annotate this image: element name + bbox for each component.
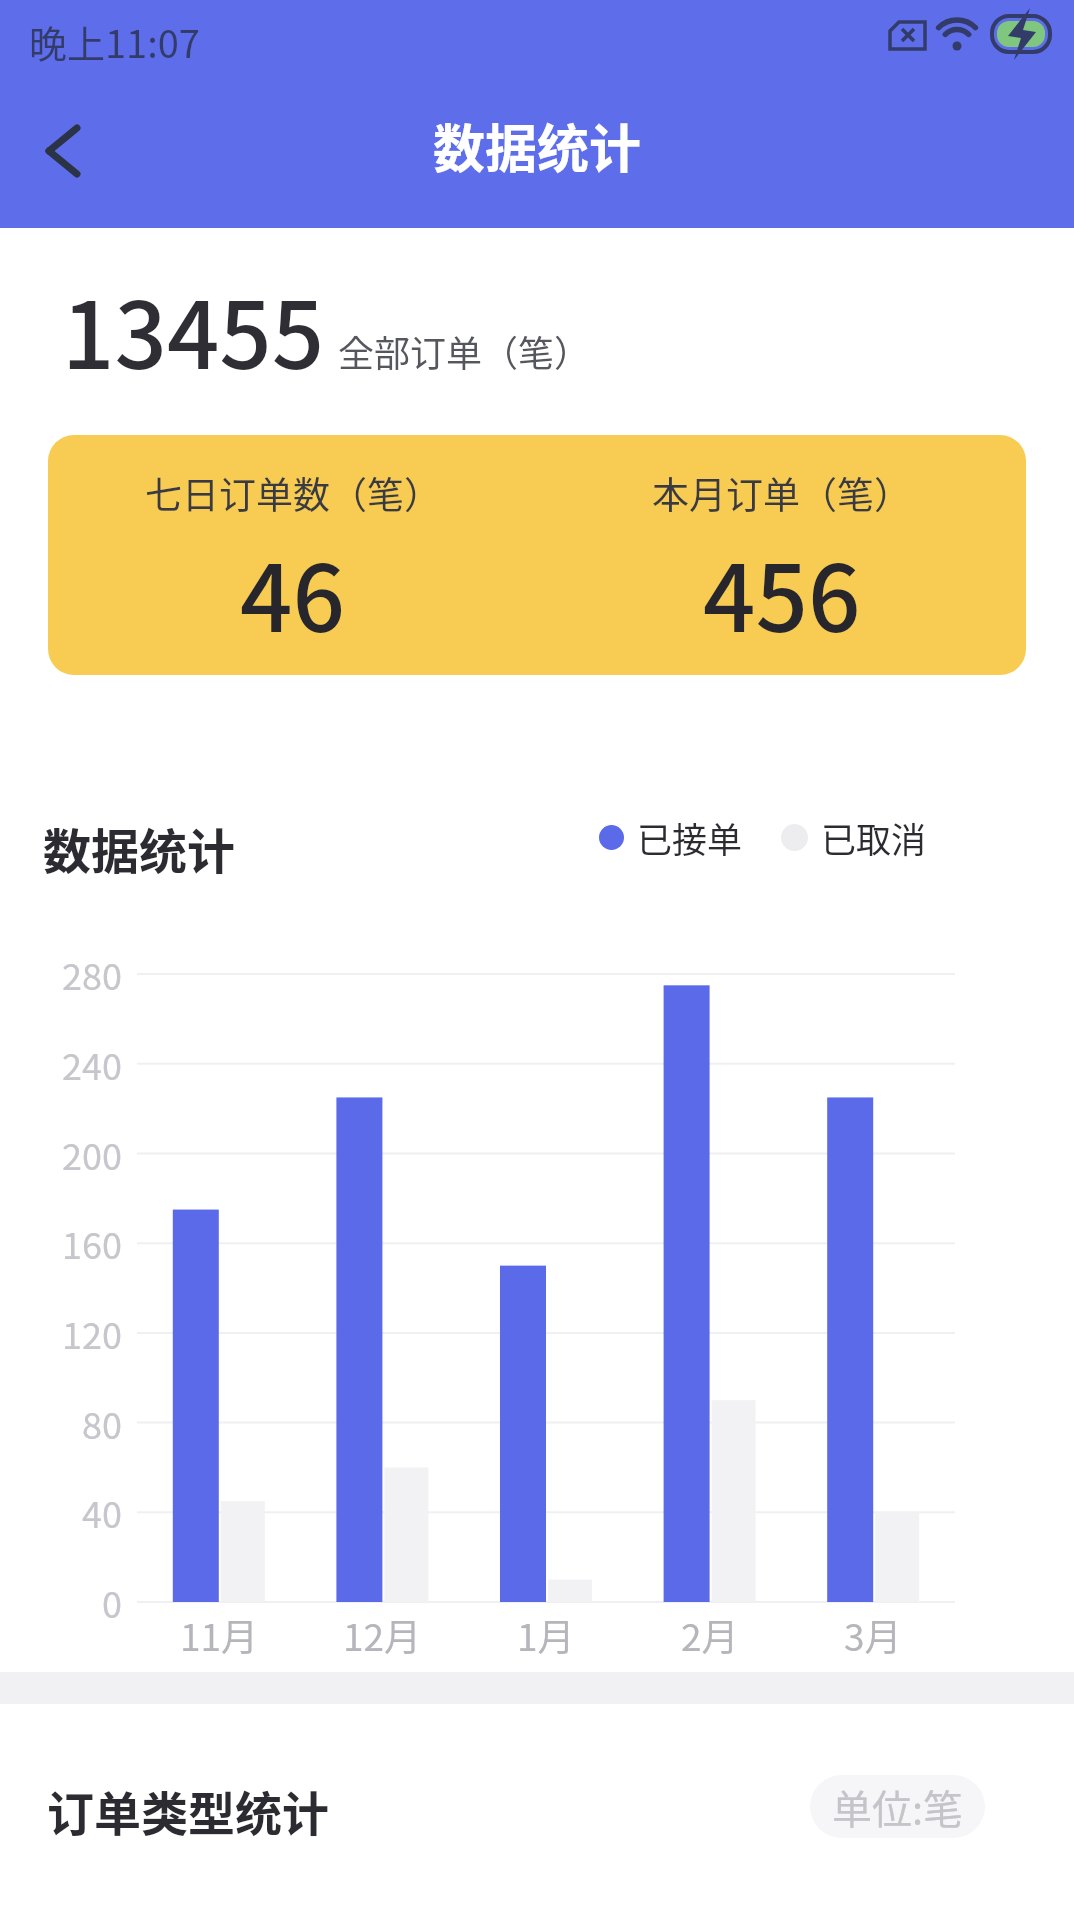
staticText: 单位:笔 [832,1778,964,1836]
staticText: 本月订单（笔） [652,466,911,520]
staticText: 456 [703,525,861,658]
button[interactable]: 七日订单数（笔） [48,435,1026,675]
staticText: 240 [62,1038,122,1090]
staticText: 订单类型统计 [47,1776,329,1844]
staticText: 13455 [62,262,325,395]
staticText: 200 [62,1128,122,1180]
staticText: 160 [62,1217,122,1269]
staticText: 80 [82,1397,122,1449]
staticText: 已取消 [821,812,927,863]
staticText: 280 [62,948,122,1000]
staticText: 全部订单（笔） [338,325,591,377]
staticText: 40 [82,1486,122,1538]
staticText: 46 [240,525,345,658]
staticText: 120 [62,1307,122,1359]
button[interactable] [20,110,110,200]
staticText: 11月 [180,1608,259,1662]
button[interactable]: 已接单 [599,812,927,863]
staticText: 已接单 [637,812,743,863]
staticText: 0 [102,1576,122,1628]
staticText: 1月 [517,1608,575,1662]
staticText: 12月 [343,1608,422,1662]
staticText: 2月 [681,1608,739,1662]
staticText: 3月 [844,1608,902,1662]
staticText: 七日订单数（笔） [145,466,441,520]
staticText: 晚上11:07 [29,14,200,69]
button[interactable]: 单位:笔 [810,1775,985,1838]
staticText: 数据统计 [433,108,642,183]
staticText: 数据统计 [43,813,236,883]
